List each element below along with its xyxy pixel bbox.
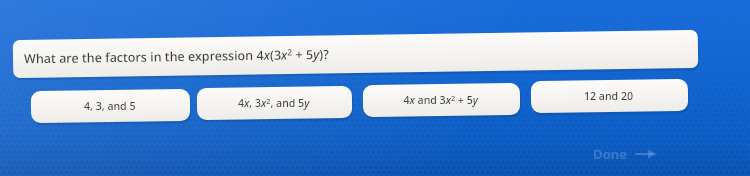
button[interactable]: Answer option 12 and 20 (531, 78, 688, 112)
button[interactable]: Answer option 4x and 3x squared plus 5y (363, 82, 520, 116)
button[interactable]: Done (586, 142, 664, 167)
button[interactable]: Question: What are the factors in the ex… (12, 35, 697, 78)
button[interactable]: Answer option 4, 3, and 5 (31, 88, 190, 122)
button[interactable]: Answer option 4x, 3x squared, and 5y (197, 85, 352, 119)
